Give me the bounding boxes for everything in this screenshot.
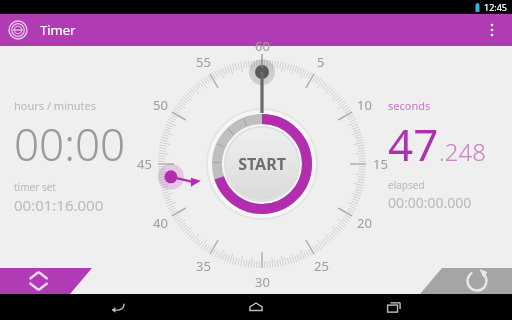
button[interactable]: App icon [8,20,28,40]
button[interactable]: Back [98,294,138,320]
staticText: 40 [153,214,168,232]
staticText: 12:45 [484,1,508,13]
staticText: 30 [255,273,270,291]
staticText: Timer [40,21,76,39]
button[interactable]: START [226,128,298,200]
staticText: 47 [388,114,439,174]
staticText: hours / minutes [14,98,97,113]
staticText: elapsed [388,178,425,192]
button[interactable]: Recent apps [374,294,414,320]
staticText: 45 [137,155,152,173]
staticText: 10 [357,96,372,114]
staticText: seconds [388,98,431,113]
staticText: START [238,153,286,175]
button[interactable]: More options [480,18,504,42]
staticText: 35 [196,257,211,275]
staticText: 20 [357,214,372,232]
staticText: 00:01:16.000 [14,195,104,215]
staticText: 5 [317,53,325,71]
button[interactable]: Adjust [0,268,92,294]
button[interactable]: Home [236,294,276,320]
staticText: timer set [14,180,56,194]
staticText: 00:00:00.000 [388,193,472,212]
staticText: 50 [153,96,168,114]
staticText: 60 [255,37,270,55]
staticText: 15 [373,155,388,173]
staticText: 00:00 [14,114,126,174]
staticText: 55 [196,53,211,71]
staticText: .248 [439,135,486,168]
button[interactable]: Reset [420,268,512,294]
staticText: 25 [314,257,329,275]
